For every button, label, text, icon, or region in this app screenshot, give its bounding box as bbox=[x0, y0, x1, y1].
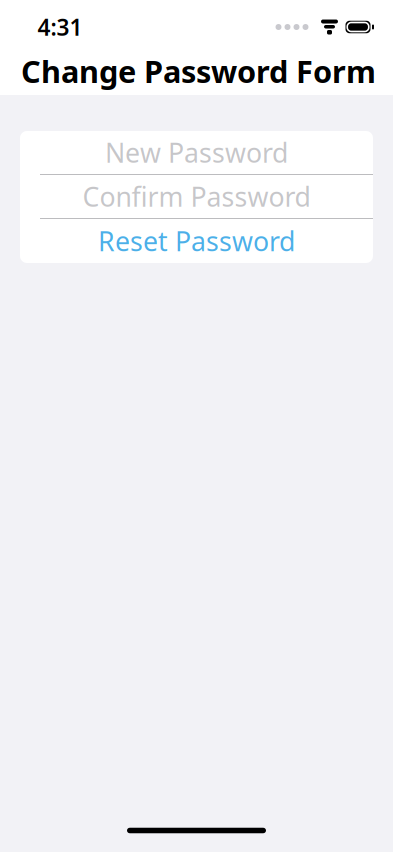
button[interactable]: Reset Password bbox=[20, 219, 373, 263]
staticText: Change Password Form bbox=[21, 51, 376, 91]
staticText: Reset Password bbox=[98, 223, 295, 259]
staticText: New Password bbox=[105, 135, 288, 170]
staticText: 4:31 bbox=[37, 12, 82, 42]
staticText: Confirm Password bbox=[82, 179, 310, 214]
button[interactable]: New Password bbox=[20, 131, 373, 174]
button[interactable]: Confirm Password bbox=[20, 175, 373, 218]
